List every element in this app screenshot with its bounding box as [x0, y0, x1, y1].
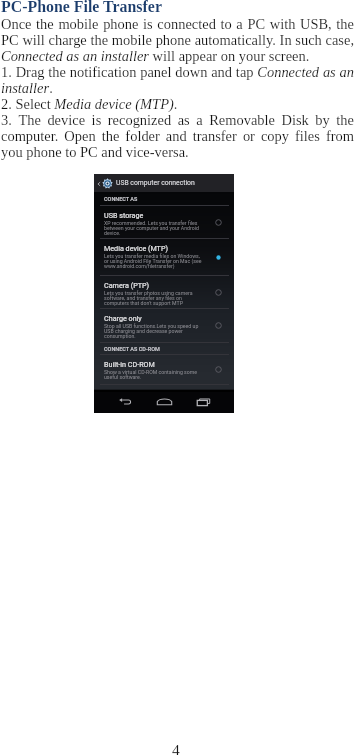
button[interactable]: Built-in CD-ROM — [94, 355, 234, 385]
staticText: USB storage — [104, 211, 144, 219]
staticText: Stop all USB functions.Lets you speed up… — [104, 323, 205, 340]
staticText: Once the mobile phone is connected to a … — [1, 16, 354, 64]
staticText: Built-in CD-ROM — [104, 360, 155, 368]
staticText: 3. The device is recognized as a Removab… — [1, 112, 354, 160]
button[interactable]: Camera (PTP) — [94, 276, 234, 309]
staticText: USB computer connection — [116, 179, 195, 187]
staticText: 2. Select Media device (MTP). — [1, 96, 354, 112]
staticText: 1. Drag the notification panel down and … — [1, 64, 354, 96]
staticText: CONNECT AS CD-ROM — [104, 346, 160, 352]
button[interactable]: Home — [154, 391, 174, 412]
button[interactable]: Back — [115, 391, 135, 412]
staticText: Media device (MTP) — [104, 244, 168, 252]
staticText: XP recommended. Lets you transfer files … — [104, 220, 205, 237]
staticText: Lets you transfer media files on Windows… — [104, 253, 205, 270]
staticText: CONNECT AS — [104, 196, 138, 202]
staticText: Camera (PTP) — [104, 281, 150, 289]
button[interactable]: Media device (MTP) — [94, 239, 234, 276]
staticText: Show a virtual CD-ROM containing some us… — [104, 369, 205, 381]
button[interactable]: Recent apps — [193, 391, 213, 412]
button[interactable]: Navigate up — [95, 180, 102, 187]
staticText: PC-Phone File Transfer — [1, 0, 162, 16]
staticText: Charge only — [104, 314, 142, 322]
button[interactable]: Charge only — [94, 309, 234, 343]
staticText: Lets you transfer photos using camera so… — [104, 290, 205, 307]
staticText: 4 — [172, 741, 180, 756]
button[interactable]: USB storage — [94, 206, 234, 239]
